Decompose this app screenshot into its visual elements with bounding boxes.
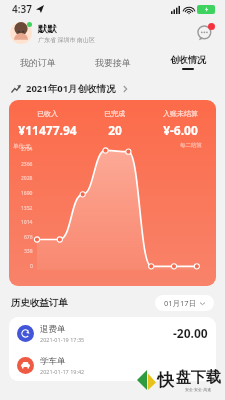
staticText: 1690 (21, 190, 33, 197)
staticText: 2028 (21, 175, 33, 182)
staticText: 2704 (21, 146, 33, 153)
staticText: 我的订单 (20, 57, 56, 68)
button[interactable]: 退费单 (9, 317, 216, 349)
staticText: 已收入 (37, 109, 58, 118)
button[interactable]: 创收情况 (150, 48, 225, 76)
staticText: 历史收益订单 (11, 297, 68, 309)
button[interactable]: 默默 (0, 18, 225, 48)
button[interactable]: 2021年01月创收情况 (11, 82, 214, 95)
staticText: 1014 (21, 219, 33, 226)
button[interactable]: 01月17日 (155, 295, 214, 311)
staticText: 入账未结算 (163, 109, 198, 118)
staticText: 1352 (21, 205, 33, 212)
staticText: 广东省 深圳市 南山区 (38, 36, 96, 44)
staticText: 2366 (21, 161, 33, 168)
staticText: 2021年01月创收情况 (26, 82, 116, 95)
button[interactable]: 已收入 (9, 100, 216, 286)
staticText: 盘下载 (176, 368, 221, 387)
staticText: 2021-01-19 17:35 (40, 336, 85, 343)
staticText: 20 (108, 122, 122, 138)
staticText: 338 (24, 248, 33, 255)
staticText: 2021-01-17 19:42 (40, 368, 85, 375)
staticText: -20.00 (173, 325, 208, 341)
button[interactable]: 学车单 (9, 349, 216, 381)
staticText: 学车单 (40, 356, 66, 367)
staticText: 安全·安全·高速 (185, 387, 212, 392)
button[interactable]: 我的订单 (0, 48, 75, 76)
staticText: ¥11477.94 (18, 122, 77, 138)
staticText: 默默 (38, 23, 57, 35)
button[interactable]: Messages (195, 23, 215, 43)
staticText: 4:37 (12, 2, 32, 16)
button[interactable]: 我要接单 (75, 48, 150, 76)
staticText: 0 (30, 263, 33, 270)
staticText: 退费单 (40, 324, 66, 335)
staticText: 快 (157, 370, 174, 391)
staticText: ¥-6.00 (163, 122, 198, 138)
staticText: 已完成 (104, 109, 125, 118)
staticText: 单位:元 (13, 142, 31, 150)
staticText: 01月17日 (164, 298, 197, 308)
staticText: 创收情况 (170, 54, 206, 65)
staticText: 每二结算 (180, 142, 202, 149)
staticText: 我要接单 (95, 57, 131, 68)
staticText: 676 (24, 234, 33, 241)
